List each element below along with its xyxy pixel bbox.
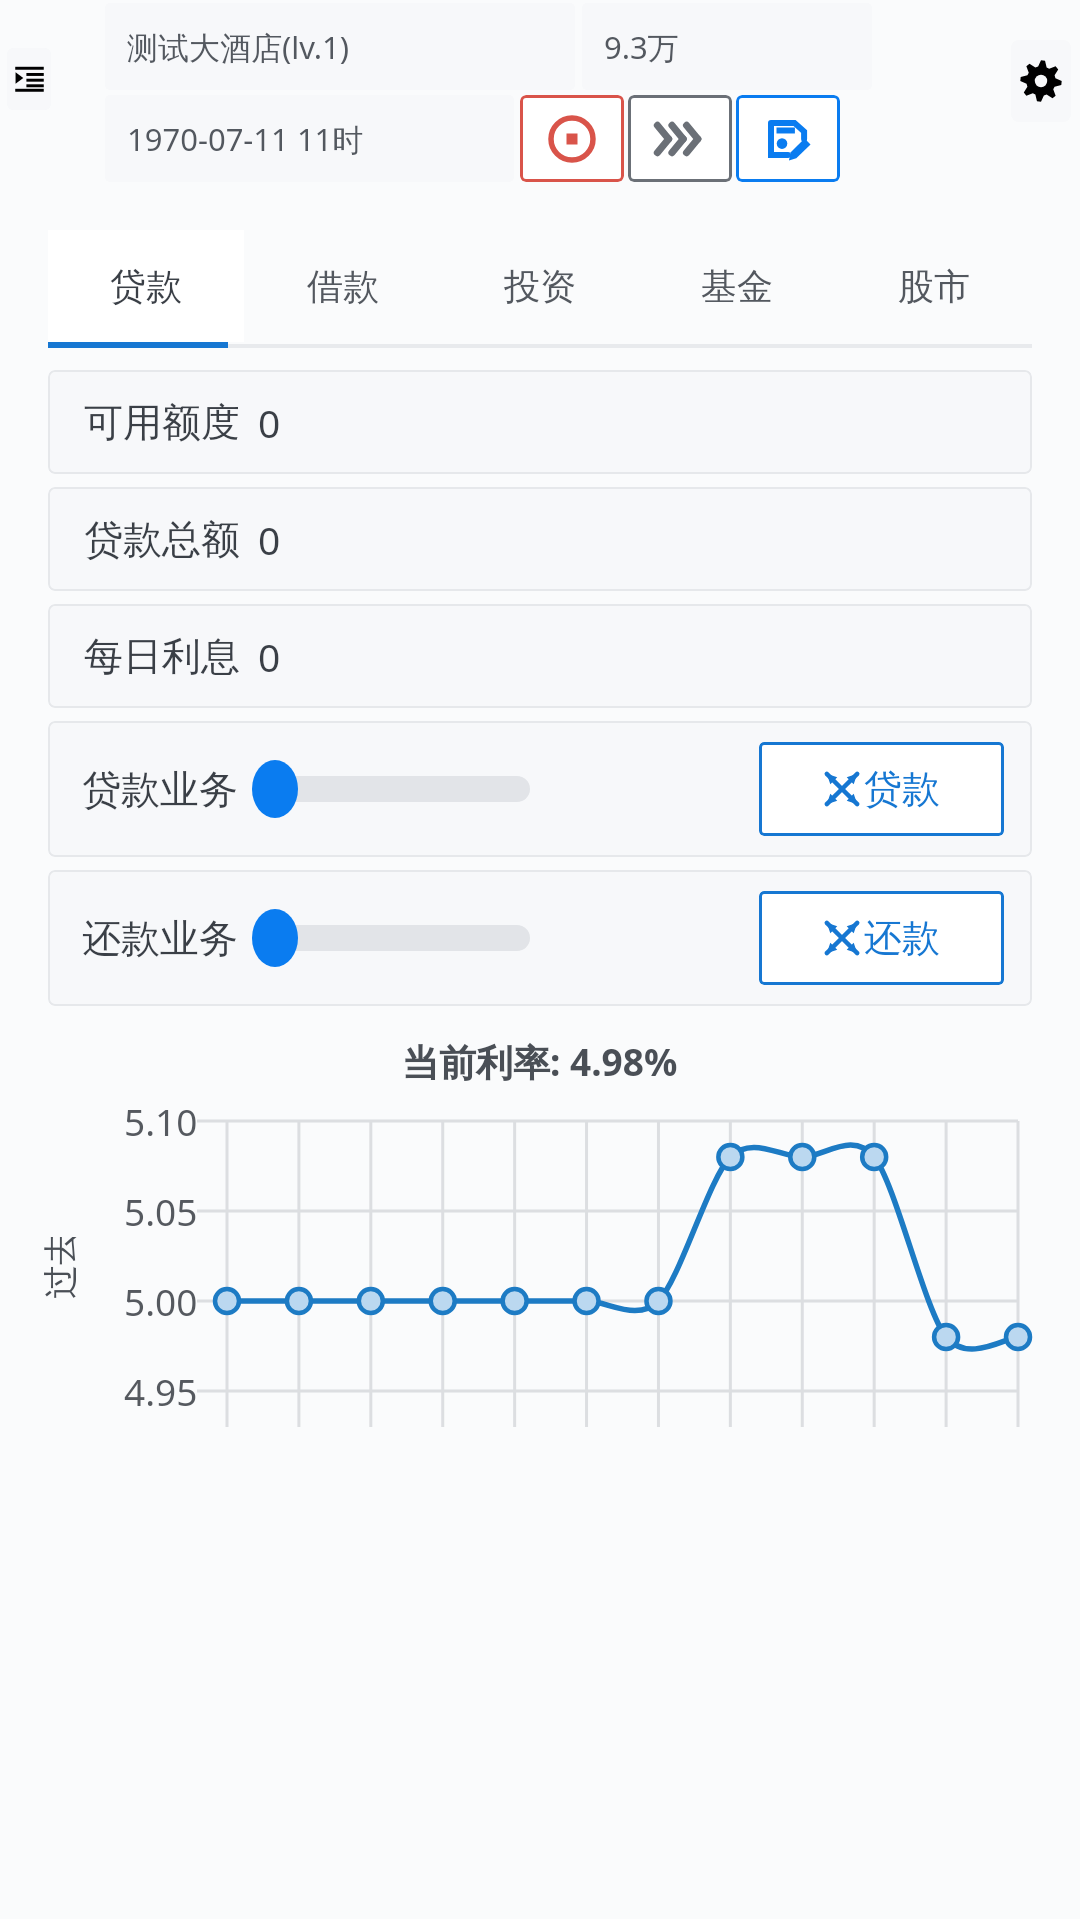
button[interactable]: 贷款业务 滑块 [252,759,530,819]
staticText: 0 [258,513,281,566]
button[interactable]: 贷款 [48,230,244,342]
staticText: 当前利率: 4.98% [402,1036,678,1087]
staticText: 股市 [898,264,970,309]
button[interactable]: 测试大酒店(lv.1) [105,3,575,90]
button[interactable]: 股市 [835,230,1032,342]
button[interactable]: 1970-07-11 11时 [105,95,514,182]
button[interactable]: Fast forward [628,95,732,182]
button[interactable]: Settings [1011,40,1071,122]
button[interactable]: Stop [520,95,624,182]
button[interactable]: 投资 [441,230,638,342]
staticText: 5.10 [124,1096,198,1146]
staticText: 9.3万 [604,26,679,68]
button[interactable]: Menu [7,48,51,110]
staticText: 贷款业务 [82,765,238,814]
staticText: 投资 [504,264,576,309]
button[interactable]: 可用额度 [48,370,1032,474]
button[interactable]: 贷款总额 [48,487,1032,591]
staticText: 贷款 [864,765,940,813]
staticText: 0 [258,630,281,683]
staticText: 贷款 [110,264,182,309]
staticText: 1970-07-11 11时 [127,118,364,160]
staticText: 0 [258,396,281,449]
staticText: 还款 [864,914,940,962]
staticText: 测试大酒店(lv.1) [127,26,350,68]
button[interactable]: 基金 [638,230,835,342]
staticText: 基金 [701,264,773,309]
staticText: 每日利息 [84,632,240,681]
staticText: 过去12个月利率(%) [36,1237,82,1299]
staticText: 5.00 [124,1276,198,1326]
button[interactable]: Save [736,95,840,182]
staticText: 4.95 [124,1366,198,1416]
staticText: 借款 [307,264,379,309]
button[interactable]: 每日利息 [48,604,1032,708]
staticText: 还款业务 [82,914,238,963]
staticText: 5.05 [124,1186,198,1236]
button[interactable]: 还款业务 滑块 [252,908,530,968]
staticText: 可用额度 [84,398,240,447]
staticText: 贷款总额 [84,515,240,564]
button[interactable]: 贷款 [759,742,1004,836]
button[interactable]: 9.3万 [582,3,872,90]
button[interactable]: 借款 [244,230,441,342]
button[interactable]: 还款 [759,891,1004,985]
